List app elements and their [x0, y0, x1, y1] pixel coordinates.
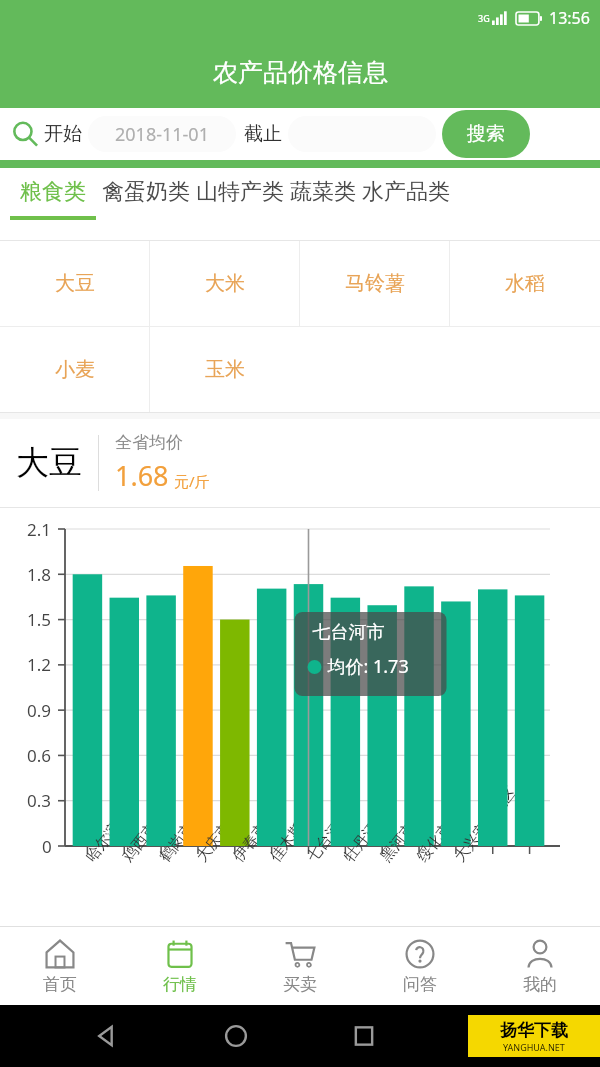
staticText: 大豆	[55, 271, 95, 296]
button[interactable]: 大豆	[0, 241, 150, 326]
staticText: 问答	[403, 974, 437, 995]
button[interactable]: 山特产类	[196, 168, 284, 216]
button[interactable]: 小麦	[0, 327, 150, 412]
staticText: 大豆	[16, 442, 82, 484]
button[interactable]: Home	[215, 1015, 257, 1057]
button[interactable]: 马铃薯	[300, 241, 450, 326]
button[interactable]: 大米	[150, 241, 300, 326]
staticText: 禽蛋奶类	[102, 178, 190, 206]
staticText: 山特产类	[196, 178, 284, 206]
button[interactable]: 买卖	[240, 927, 360, 1005]
staticText: 马铃薯	[345, 271, 405, 296]
staticText: 玉米	[205, 357, 245, 382]
staticText: 蔬菜类	[290, 178, 356, 206]
button[interactable]: Back	[86, 1015, 128, 1057]
staticText: 全省均价	[115, 432, 183, 453]
button[interactable]: Recents	[343, 1015, 385, 1057]
staticText: 2018-11-01	[115, 122, 209, 147]
staticText: 买卖	[283, 974, 317, 995]
staticText: 大米	[205, 271, 245, 296]
staticText: 开始	[44, 122, 82, 146]
staticText: 行情	[163, 974, 197, 995]
staticText: 1.68	[115, 457, 169, 494]
button[interactable]: 蔬菜类	[290, 168, 356, 216]
staticText: 水稻	[505, 271, 545, 296]
staticText: 搜索	[467, 122, 505, 146]
staticText: 元/斤	[174, 471, 210, 491]
staticText: YANGHUA.NET	[503, 1041, 565, 1053]
button[interactable]: 行情	[120, 927, 240, 1005]
button[interactable]: 搜索	[442, 110, 530, 158]
button[interactable]: 水稻	[450, 241, 600, 326]
staticText: 扬华下载	[500, 1020, 568, 1041]
staticText: 小麦	[55, 357, 95, 382]
staticText: 农产品价格信息	[213, 57, 388, 88]
staticText: 13:56	[549, 7, 590, 29]
staticText: 截止	[244, 122, 282, 146]
button[interactable]: 玉米	[150, 327, 300, 412]
button[interactable]: 2018-11-01	[88, 116, 236, 152]
button[interactable]: 问答	[360, 927, 480, 1005]
staticText: 水产品类	[362, 178, 450, 206]
button[interactable]: 水产品类	[362, 168, 450, 216]
staticText: 3G	[478, 12, 490, 24]
staticText: 粮食类	[20, 178, 86, 206]
button[interactable]: 粮食类	[10, 168, 96, 220]
button[interactable]: 我的	[480, 927, 600, 1005]
staticText: 我的	[523, 974, 557, 995]
staticText: 首页	[43, 974, 77, 995]
button[interactable]: 首页	[0, 927, 120, 1005]
button[interactable]: 禽蛋奶类	[102, 168, 190, 216]
